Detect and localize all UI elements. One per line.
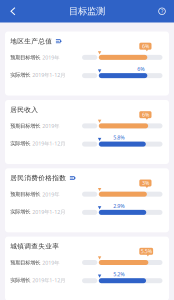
staticText: 2019年1-12月: [32, 277, 65, 284]
staticText: 2019年1-12月: [32, 208, 65, 215]
staticText: 实际增长: [10, 72, 30, 78]
staticText: 居民收入: [10, 106, 38, 114]
staticText: 预期目标增长: [10, 259, 40, 266]
staticText: 实际增长: [10, 277, 30, 283]
staticText: 2019年1-12月: [32, 71, 65, 79]
staticText: 预期目标增长: [10, 191, 40, 198]
staticText: 2019年: [42, 122, 59, 130]
staticText: 预期目标增长: [10, 54, 40, 61]
staticText: 居民消费价格指数: [10, 174, 66, 182]
button[interactable]: 居民消费价格指数: [5, 168, 169, 232]
staticText: 5.5%: [141, 248, 152, 255]
button[interactable]: 帮助: [150, 0, 174, 22]
staticText: 2019年: [42, 191, 59, 198]
staticText: 地区生产总值: [10, 37, 52, 45]
staticText: 3%: [142, 179, 149, 187]
staticText: 实际增长: [10, 209, 30, 215]
staticText: ?: [161, 8, 163, 15]
staticText: 预期目标增长: [10, 123, 40, 129]
staticText: 2019年1-12月: [32, 140, 65, 147]
staticText: 目标监测: [69, 5, 105, 17]
staticText: 2019年: [42, 54, 59, 61]
button[interactable]: 居民收入: [5, 100, 169, 164]
staticText: 城镇调查失业率: [10, 242, 59, 250]
staticText: 5.2%: [113, 271, 124, 278]
staticText: 6%: [142, 111, 149, 118]
staticText: 6%: [137, 65, 144, 73]
staticText: 6%: [142, 43, 149, 50]
staticText: 2019年: [42, 259, 59, 266]
staticText: 实际增长: [10, 140, 30, 147]
staticText: 5.8%: [113, 134, 124, 141]
button[interactable]: 城镇调查失业率: [5, 237, 169, 300]
button[interactable]: 地区生产总值: [5, 31, 169, 95]
staticText: 2.9%: [113, 202, 124, 209]
button[interactable]: 返回: [0, 0, 26, 22]
